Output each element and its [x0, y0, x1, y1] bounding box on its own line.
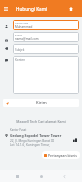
staticText: Kantor Pusat [10, 128, 27, 132]
button[interactable]: Recents [12, 171, 23, 182]
button[interactable]: Home [65, 3, 77, 15]
staticText: nama@mail.com [15, 37, 39, 41]
staticText: E-mail [15, 33, 22, 36]
staticText: Kirim [36, 100, 47, 106]
staticText: Maxxell Tech Cari alamat Kami [0, 119, 82, 124]
staticText: Pertanyaan bisnis [48, 153, 77, 158]
button[interactable]: Back [59, 171, 70, 182]
staticText: 22, Jl. Mega Kuningan Barat III [10, 139, 55, 143]
staticText: Muhammad [15, 25, 33, 29]
button[interactable]: Subjek [13, 44, 79, 54]
staticText: Nama Anda [15, 21, 29, 24]
button[interactable]: E-mail [13, 32, 79, 42]
button[interactable]: Menu [0, 3, 12, 15]
other: Office [73, 138, 77, 142]
other: Send [6, 102, 9, 105]
button[interactable]: Send [3, 99, 79, 107]
button[interactable]: Konten [13, 56, 79, 94]
button[interactable]: Pertanyaan bisnis [42, 151, 80, 159]
button[interactable]: Nama Anda [13, 20, 79, 30]
staticText: Lot 14.1-6, Kuningan Timur, [10, 143, 50, 147]
staticText: Hubungi Kami [16, 6, 48, 12]
staticText: Gedung Sopodel Tower Tower [10, 133, 62, 138]
staticText: Subjek [15, 48, 25, 52]
staticText: Konten [15, 58, 26, 62]
button[interactable]: Home [36, 171, 47, 182]
